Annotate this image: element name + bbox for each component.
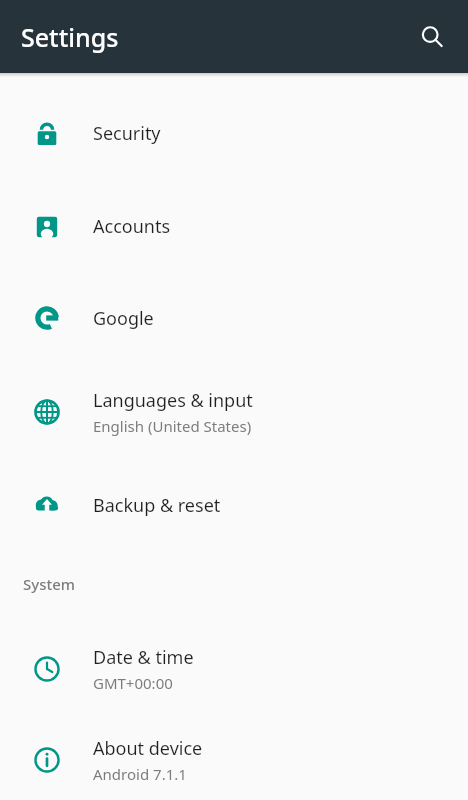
- staticText: GMT+00:00: [93, 673, 173, 693]
- staticText: English (United States): [93, 416, 252, 436]
- button[interactable]: Accounts: [0, 180, 468, 273]
- button[interactable]: Date & time: [0, 619, 468, 719]
- staticText: Settings: [21, 20, 119, 54]
- staticText: Languages & input: [93, 388, 253, 413]
- button[interactable]: Backup & reset: [0, 461, 468, 549]
- staticText: Backup & reset: [93, 493, 221, 518]
- staticText: Accounts: [93, 214, 171, 239]
- staticText: Android 7.1.1: [93, 764, 187, 784]
- button[interactable]: Languages & input: [0, 363, 468, 461]
- staticText: Date & time: [93, 645, 194, 670]
- staticText: Google: [93, 306, 154, 331]
- staticText: System: [23, 574, 76, 594]
- staticText: Security: [93, 121, 161, 146]
- button[interactable]: Google: [0, 273, 468, 363]
- button[interactable]: About device: [0, 719, 468, 800]
- button[interactable]: Search: [409, 14, 455, 60]
- staticText: About device: [93, 736, 203, 761]
- button[interactable]: Security: [0, 86, 468, 180]
